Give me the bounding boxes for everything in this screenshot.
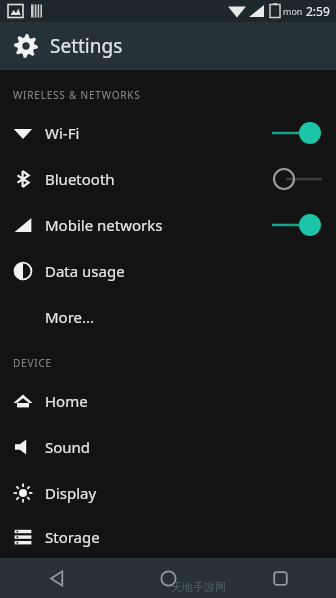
button[interactable]: Wi-Fi on (266, 115, 328, 151)
staticText: Data usage (45, 261, 125, 281)
staticText: Mobile networks (45, 215, 163, 235)
staticText: Settings (50, 33, 123, 59)
button[interactable]: Wi-Fi (0, 110, 336, 156)
staticText: More... (45, 307, 95, 327)
staticText: Bluetooth (45, 169, 115, 189)
staticText: WIRELESS & NETWORKS (13, 88, 141, 102)
button[interactable]: Mobile networks on (266, 207, 328, 243)
button[interactable]: Recent apps (224, 558, 336, 598)
staticText: DEVICE (13, 356, 52, 370)
button[interactable]: Sound (0, 424, 336, 470)
button[interactable]: Home (0, 378, 336, 424)
staticText: Wi-Fi (45, 123, 80, 143)
button[interactable]: Settings (0, 22, 336, 70)
staticText: Storage (45, 527, 100, 547)
staticText: mon (283, 5, 303, 17)
staticText: Display (45, 483, 97, 503)
button[interactable]: Data usage (0, 248, 336, 294)
button[interactable]: Storage (0, 516, 336, 558)
staticText: 2:59 (306, 3, 330, 19)
staticText: Sound (45, 437, 91, 457)
button[interactable]: Bluetooth off (266, 161, 328, 197)
staticText: 天地手游网 (171, 580, 226, 594)
button[interactable]: More... (0, 294, 336, 340)
button[interactable]: Back (0, 558, 112, 598)
button[interactable]: Bluetooth (0, 156, 336, 202)
button[interactable]: Mobile networks (0, 202, 336, 248)
button[interactable]: Display (0, 470, 336, 516)
staticText: Home (45, 391, 88, 411)
button[interactable]: Home (112, 558, 224, 598)
